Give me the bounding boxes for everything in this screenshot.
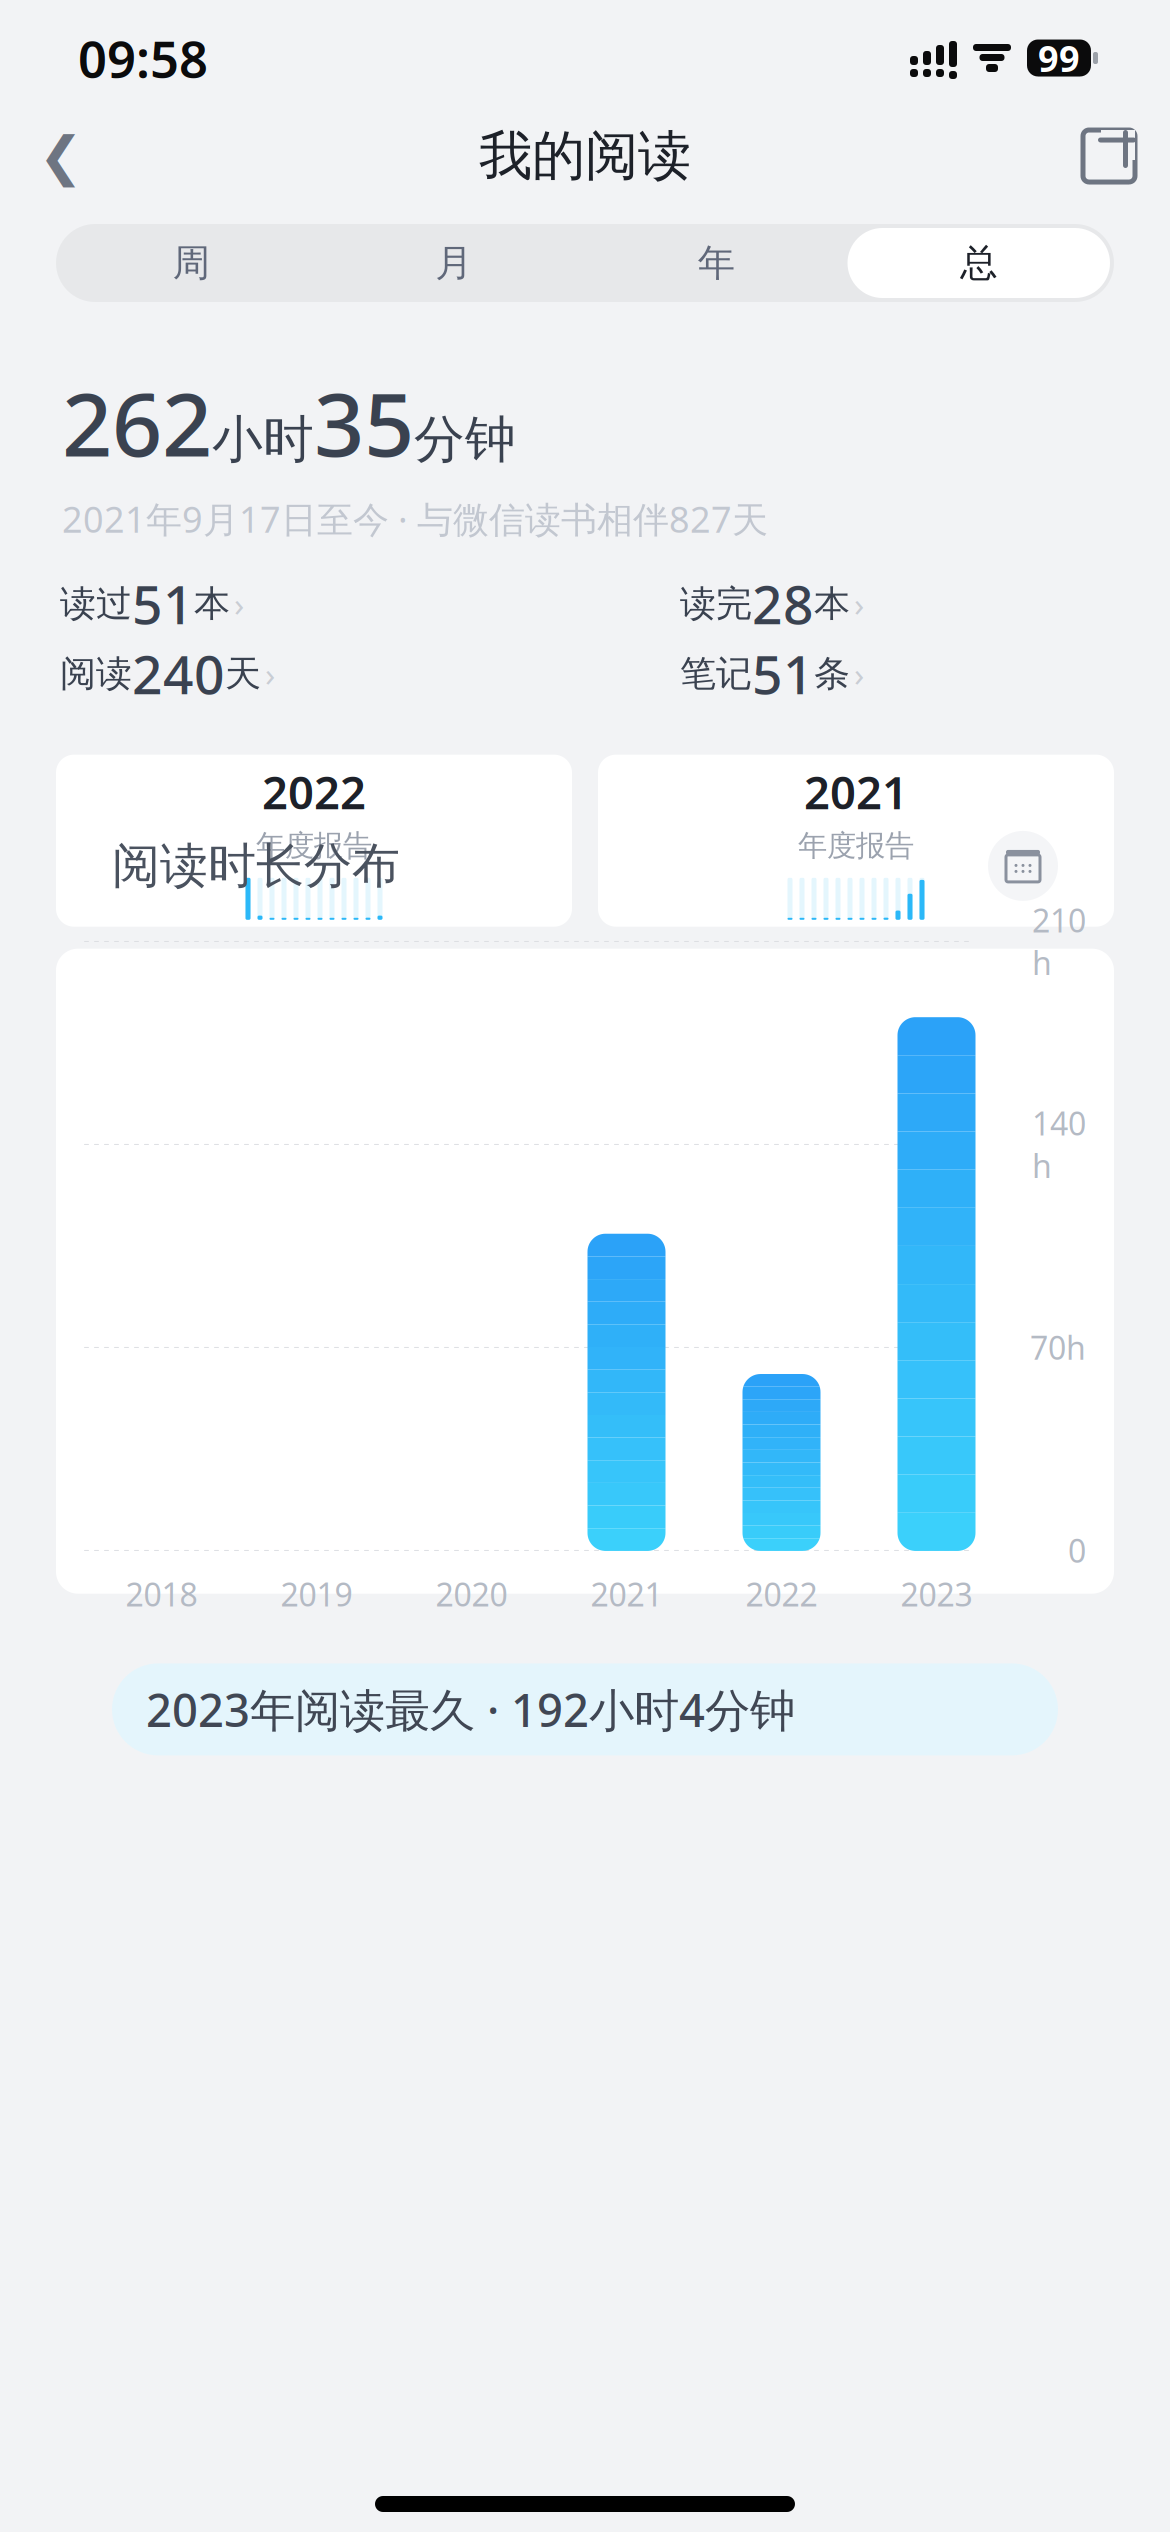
staticText: 周 (173, 240, 210, 286)
staticText: › (265, 651, 275, 696)
button[interactable]: 笔记 (680, 643, 1020, 705)
staticText: 28 (752, 568, 814, 639)
button[interactable]: 总 (847, 228, 1110, 298)
staticText: 读完 (680, 582, 752, 626)
button[interactable]: 分享 (1064, 111, 1154, 201)
staticText: › (854, 651, 864, 696)
button[interactable]: 2021 (598, 755, 1114, 927)
staticText: 2021 (590, 1573, 662, 1615)
staticText: 年度报告 (256, 828, 372, 864)
staticText: 总 (960, 240, 997, 286)
button[interactable]: 月 (322, 228, 585, 298)
staticText: 我的阅读 (479, 123, 691, 189)
staticText: 月 (435, 240, 472, 286)
button[interactable]: 读过 (60, 573, 400, 635)
staticText: 阅读 (60, 652, 132, 696)
staticText: 51 (132, 568, 194, 639)
staticText: 年度报告 (798, 828, 914, 864)
staticText: 2021 (804, 762, 908, 822)
button[interactable]: 2022 (56, 755, 572, 927)
staticText: 210h (1032, 899, 1086, 984)
button[interactable]: 返回 (16, 111, 106, 201)
staticText: 本 (814, 582, 850, 626)
staticText: 天 (225, 652, 261, 696)
staticText: ❮ (38, 126, 83, 186)
staticText: 70h (1030, 1326, 1086, 1369)
staticText: 2022 (745, 1573, 817, 1615)
staticText: 2023 (900, 1573, 972, 1615)
staticText: 240 (132, 638, 225, 709)
staticText: 0 (1068, 1529, 1086, 1572)
button[interactable]: 阅读 (60, 643, 400, 705)
staticText: 2019 (280, 1573, 352, 1615)
staticText: 本 (194, 582, 230, 626)
button[interactable]: 读完 (680, 573, 1020, 635)
staticText: 2018 (125, 1573, 197, 1615)
staticText: 99 (1038, 34, 1080, 82)
staticText: 小时 (212, 409, 314, 471)
staticText: 笔记 (680, 652, 752, 696)
staticText: › (854, 581, 864, 626)
staticText: 2020 (435, 1573, 507, 1615)
staticText: 分钟 (414, 409, 516, 471)
button[interactable]: 年 (585, 228, 847, 298)
staticText: 年 (698, 240, 735, 286)
staticText: 09:58 (78, 24, 208, 92)
button[interactable]: 日历视图 (988, 831, 1058, 901)
staticText: 51 (752, 638, 814, 709)
staticText: 35 (314, 364, 414, 481)
staticText: 262 (62, 364, 212, 481)
button[interactable]: 周 (60, 228, 322, 298)
staticText: 读过 (60, 582, 132, 626)
staticText: › (234, 581, 244, 626)
staticText: 2022 (262, 762, 366, 822)
staticText: 2021年9月17日至今 · 与微信读书相伴827天 (62, 495, 768, 543)
staticText: 140h (1032, 1102, 1086, 1187)
staticText: 阅读时长分布 (112, 836, 400, 895)
staticText: 条 (814, 652, 850, 696)
staticText: 2023年阅读最久 · 192小时4分钟 (146, 1679, 795, 1739)
